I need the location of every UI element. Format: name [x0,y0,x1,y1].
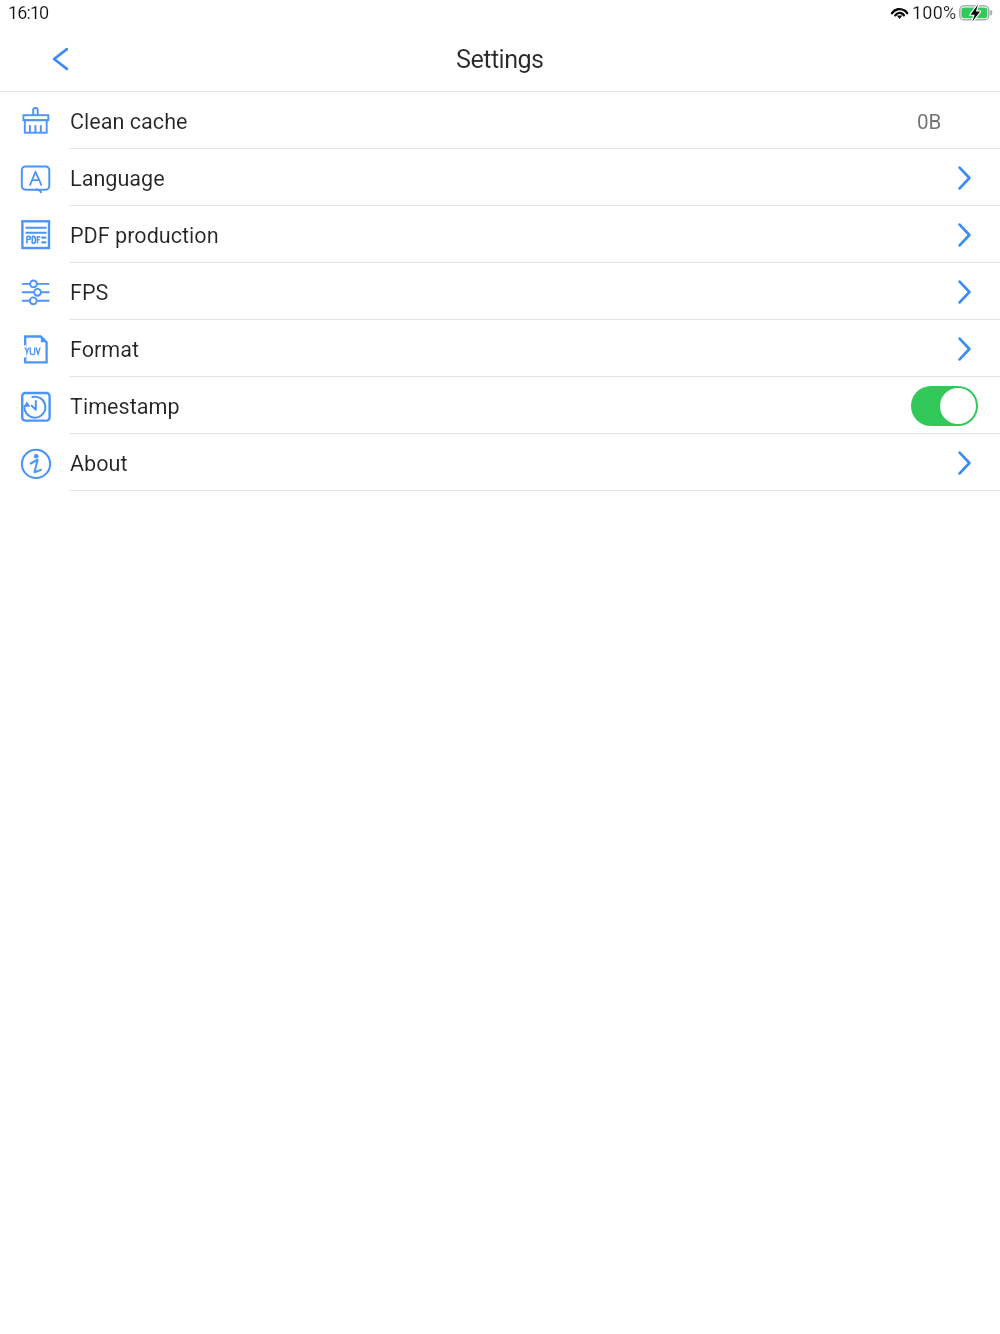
button[interactable]: About [0,434,1000,491]
staticText: About [70,451,128,476]
staticText: 0B [917,110,942,134]
button[interactable]: FPS [0,263,1000,320]
staticText: Settings [456,45,544,75]
button[interactable]: Format [0,320,1000,377]
staticText: 16:10 [8,2,49,23]
button[interactable]: Timestamp on [911,386,978,426]
button[interactable]: Language [0,149,1000,206]
staticText: Timestamp [70,394,180,419]
button[interactable]: Timestamp [0,377,1000,434]
button[interactable]: PDF production [0,206,1000,263]
button[interactable]: Back [37,36,82,81]
staticText: Clean cache [70,109,188,134]
staticText: 100% [912,2,957,23]
staticText: FPS [70,280,109,305]
staticText: PDF production [70,223,219,248]
staticText: Language [70,166,165,191]
button[interactable]: Clean cache [0,92,1000,149]
staticText: Format [70,337,140,362]
